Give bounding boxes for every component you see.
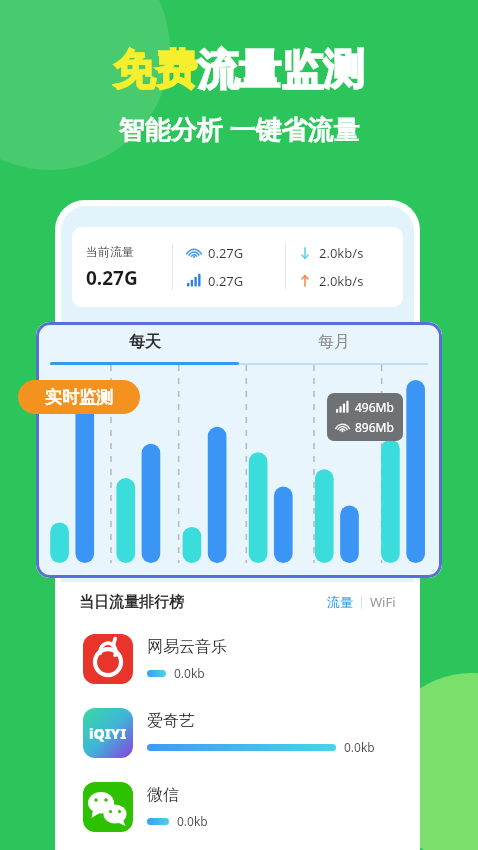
staticText: 每月 — [318, 332, 350, 352]
button[interactable]: 网易云音乐 — [83, 622, 392, 696]
staticText: 0.27G — [208, 244, 244, 262]
staticText: 0.0kb — [174, 665, 205, 681]
staticText: 2.0kb/s — [319, 272, 364, 290]
staticText: 896Mb — [355, 419, 394, 435]
button[interactable]: 当前流量 — [72, 227, 403, 307]
button[interactable]: iQIYI — [83, 696, 392, 770]
staticText: WiFi — [370, 593, 396, 611]
other: wifi — [187, 246, 201, 260]
staticText: 2.0kb/s — [319, 244, 364, 262]
staticText: 智能分析 一键省流量 — [0, 111, 478, 147]
staticText: 0.27G — [86, 265, 138, 291]
staticText: 0.0kb — [344, 739, 375, 755]
staticText: 496Mb — [355, 399, 394, 415]
staticText: 爱奇艺 — [147, 711, 195, 731]
button[interactable]: 流量 — [327, 594, 353, 610]
staticText: 0.0kb — [177, 813, 208, 829]
button[interactable]: 微信 — [83, 770, 392, 844]
staticText: 当前流量 — [86, 244, 134, 259]
staticText: 实时监测 — [45, 387, 113, 408]
staticText: 流量监测 — [197, 44, 365, 97]
staticText: 当日流量排行榜 — [79, 593, 184, 612]
staticText: 微信 — [147, 785, 179, 805]
other: signal — [187, 274, 201, 288]
button[interactable]: WiFi — [370, 593, 396, 611]
button[interactable]: 每月 — [239, 322, 428, 362]
staticText: iQIYI — [89, 724, 127, 743]
other: up — [298, 274, 312, 288]
button[interactable]: 每天 — [50, 322, 239, 362]
other: down — [298, 246, 312, 260]
staticText: 每天 — [129, 332, 161, 352]
button[interactable]: 实时监测 — [18, 380, 140, 414]
staticText: 免费 — [113, 44, 197, 97]
staticText: 0.27G — [208, 272, 244, 290]
staticText: 网易云音乐 — [147, 637, 227, 657]
staticText: 流量 — [327, 594, 353, 610]
